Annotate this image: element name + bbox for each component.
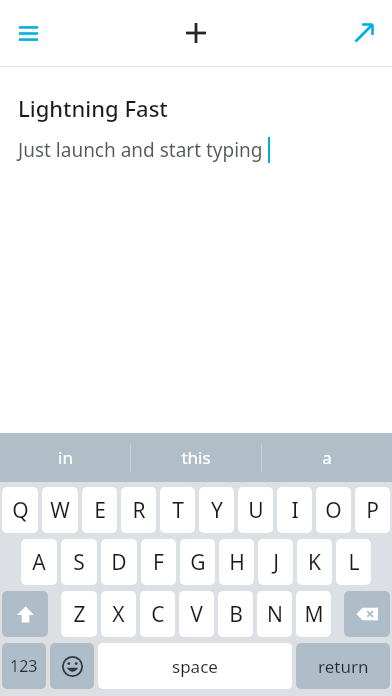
button[interactable]: U — [238, 487, 273, 533]
button[interactable]: in — [0, 433, 130, 482]
button[interactable]: T — [160, 487, 195, 533]
staticText: E — [94, 496, 106, 525]
button[interactable]: this — [131, 433, 261, 482]
staticText: G — [190, 548, 206, 577]
button[interactable]: S — [61, 539, 97, 585]
staticText: Lightning Fast — [18, 93, 168, 123]
button[interactable]: Emoji — [50, 643, 94, 689]
button[interactable]: W — [42, 487, 78, 533]
staticText: X — [112, 600, 125, 629]
staticText: J — [273, 548, 279, 577]
button[interactable]: space — [98, 643, 292, 689]
staticText: Y — [211, 496, 223, 525]
button[interactable]: New note — [168, 5, 224, 61]
staticText: B — [229, 600, 243, 629]
staticText: W — [50, 496, 70, 525]
button[interactable]: a — [262, 433, 392, 482]
staticText: F — [153, 548, 164, 577]
button[interactable]: O — [316, 487, 351, 533]
staticText: space — [172, 655, 218, 678]
staticText: S — [73, 548, 85, 577]
staticText: N — [267, 600, 283, 629]
button[interactable]: I — [277, 487, 312, 533]
button[interactable]: Y — [199, 487, 234, 533]
staticText: Z — [73, 600, 86, 629]
button[interactable]: Z — [61, 591, 97, 637]
button[interactable]: L — [336, 539, 371, 585]
staticText: U — [248, 496, 264, 525]
staticText: L — [348, 548, 360, 577]
button[interactable]: J — [258, 539, 293, 585]
button[interactable]: K — [297, 539, 332, 585]
button[interactable]: H — [219, 539, 254, 585]
staticText: I — [291, 496, 299, 525]
button[interactable]: N — [257, 591, 292, 637]
staticText: a — [322, 446, 332, 469]
button[interactable]: Q — [2, 487, 38, 533]
staticText: C — [151, 600, 165, 629]
button[interactable]: A — [21, 539, 57, 585]
button[interactable]: R — [121, 487, 156, 533]
button[interactable]: Share — [336, 5, 392, 61]
staticText: Just launch and start typing — [18, 137, 263, 163]
button[interactable]: Backspace — [344, 591, 390, 637]
button[interactable]: G — [180, 539, 215, 585]
staticText: V — [190, 600, 203, 629]
button[interactable]: M — [296, 591, 331, 637]
staticText: this — [181, 446, 211, 469]
button[interactable]: Shift — [2, 591, 48, 637]
staticText: P — [366, 496, 379, 525]
staticText: return — [318, 655, 369, 678]
button[interactable]: D — [101, 539, 137, 585]
staticText: T — [172, 496, 184, 525]
staticText: H — [229, 548, 245, 577]
button[interactable]: F — [141, 539, 176, 585]
staticText: in — [58, 446, 73, 469]
button[interactable]: B — [218, 591, 253, 637]
staticText: O — [325, 496, 342, 525]
button[interactable]: return — [296, 643, 390, 689]
button[interactable]: Menu — [0, 5, 56, 61]
button[interactable]: P — [355, 487, 390, 533]
button[interactable]: X — [101, 591, 136, 637]
button[interactable]: V — [179, 591, 214, 637]
staticText: Q — [12, 496, 29, 525]
staticText: D — [111, 548, 127, 577]
staticText: K — [308, 548, 321, 577]
button[interactable]: C — [140, 591, 175, 637]
staticText: R — [132, 496, 146, 525]
staticText: 123 — [10, 655, 38, 677]
staticText: A — [32, 548, 46, 577]
button[interactable]: E — [82, 487, 117, 533]
button[interactable]: 123 — [2, 643, 46, 689]
staticText: M — [304, 600, 324, 629]
